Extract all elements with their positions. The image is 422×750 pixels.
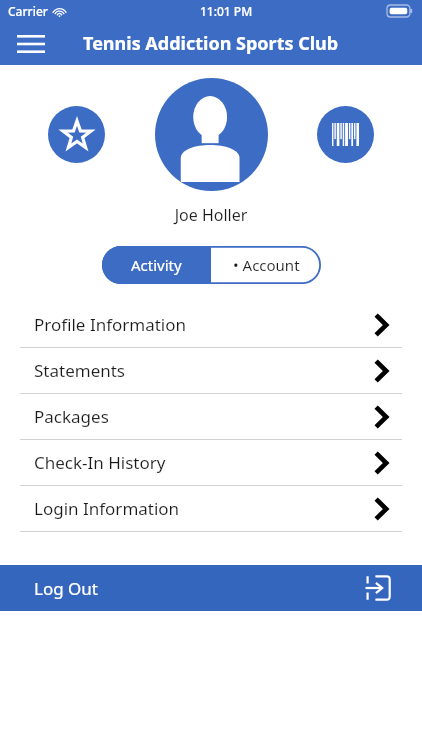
staticText: Joe Holler: [0, 204, 422, 226]
staticText: 11:01 PM: [200, 3, 253, 19]
button[interactable]: Profile Information: [0, 302, 422, 347]
staticText: Carrier: [8, 3, 48, 19]
button[interactable]: Packages: [0, 394, 422, 439]
button[interactable]: Member barcode: [317, 106, 374, 163]
button[interactable]: • Account: [211, 246, 321, 284]
staticText: Packages: [34, 405, 109, 428]
staticText: Log Out: [34, 577, 98, 600]
staticText: Tennis Addiction Sports Club: [83, 31, 339, 56]
button[interactable]: Profile photo: [155, 78, 268, 191]
staticText: Statements: [34, 359, 126, 382]
button[interactable]: Favorites: [48, 106, 105, 163]
button[interactable]: Check-In History: [0, 440, 422, 485]
button[interactable]: Activity: [102, 246, 211, 284]
staticText: Activity: [131, 255, 182, 275]
staticText: Login Information: [34, 497, 180, 520]
button[interactable]: Open navigation menu: [14, 27, 48, 61]
staticText: Profile Information: [34, 313, 187, 336]
staticText: Check-In History: [34, 451, 166, 474]
staticText: • Account: [233, 255, 300, 275]
button[interactable]: Statements: [0, 348, 422, 393]
button[interactable]: Log Out: [0, 565, 422, 611]
button[interactable]: Login Information: [0, 486, 422, 531]
